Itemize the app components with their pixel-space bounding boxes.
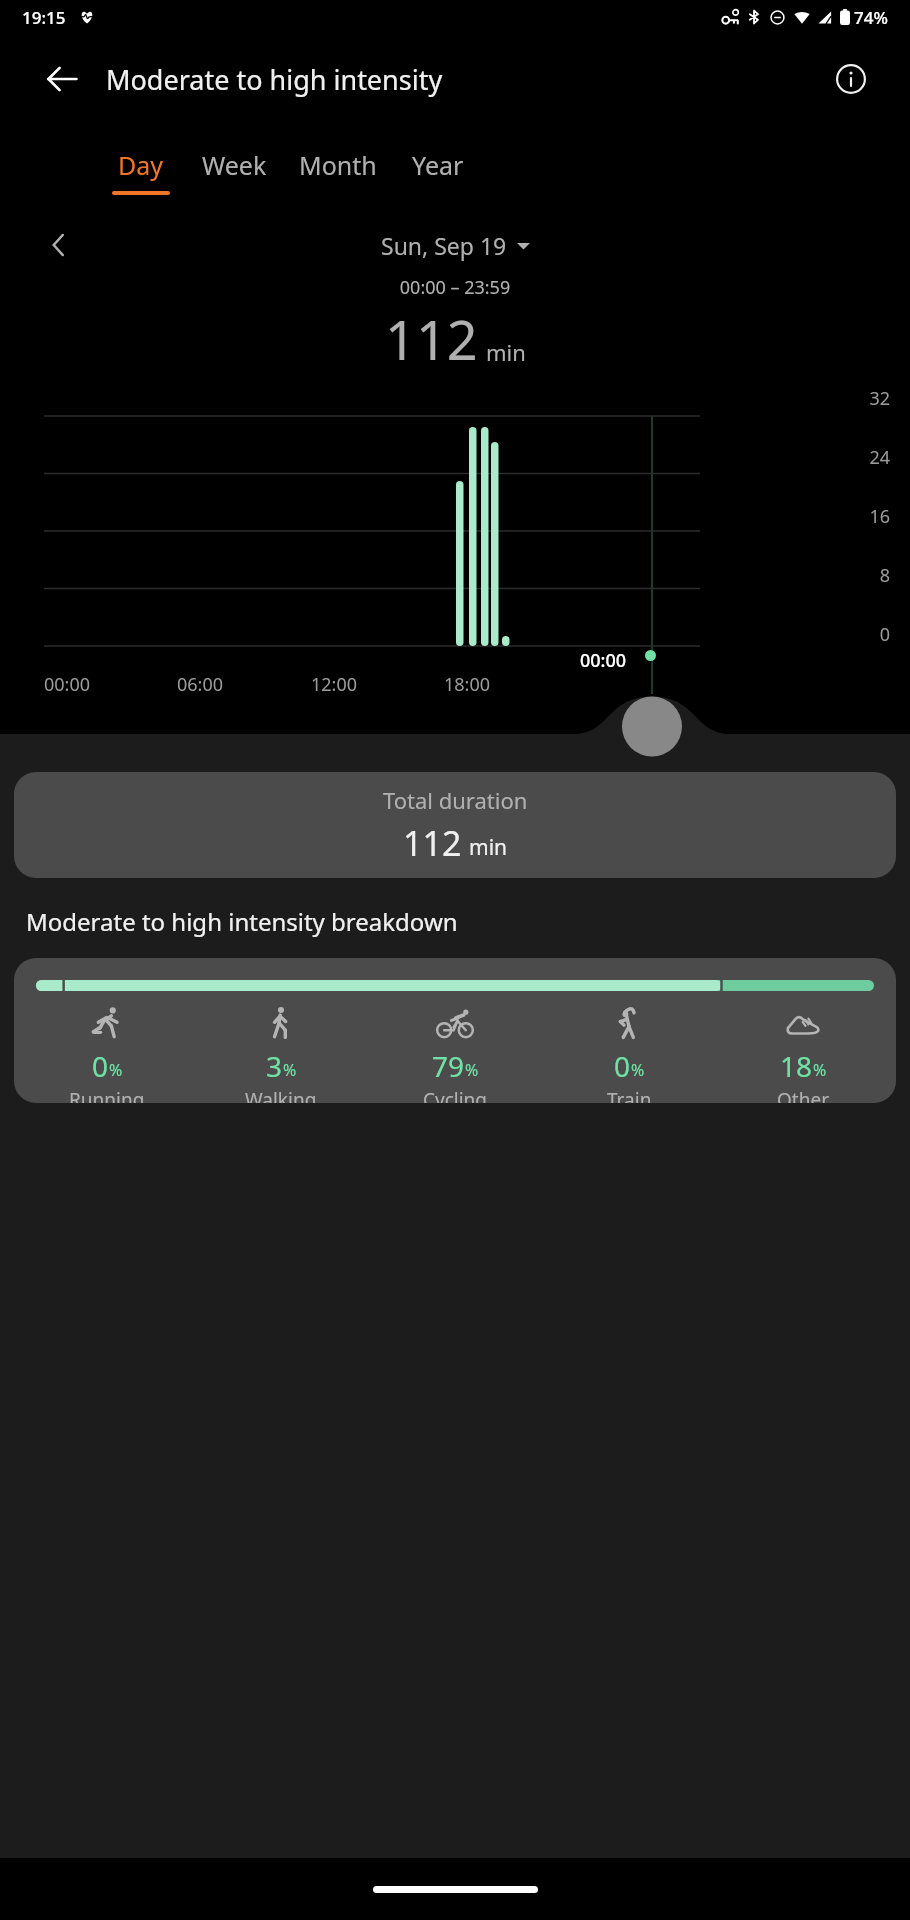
staticText: 32 bbox=[0, 386, 890, 411]
staticText: 0 bbox=[0, 622, 890, 647]
button[interactable]: 18 bbox=[716, 1005, 890, 1103]
staticText: 18 bbox=[780, 1047, 813, 1085]
staticText: 0 bbox=[92, 1047, 109, 1085]
staticText: 00:00 bbox=[44, 672, 91, 697]
staticText: 00:00 – 23:59 bbox=[0, 275, 910, 300]
staticText: 06:00 bbox=[177, 672, 224, 697]
staticText: Total duration bbox=[383, 785, 528, 815]
button[interactable]: 0 bbox=[14, 958, 896, 1103]
button[interactable]: 0 bbox=[20, 1005, 194, 1103]
staticText: 79 bbox=[432, 1047, 465, 1085]
button[interactable]: 79 bbox=[368, 1005, 542, 1103]
button[interactable]: Week bbox=[186, 148, 283, 195]
staticText: 19:15 bbox=[22, 6, 66, 29]
staticText: % bbox=[465, 1059, 479, 1081]
staticText: min bbox=[469, 833, 508, 862]
staticText: 0 bbox=[614, 1047, 631, 1085]
staticText: Running bbox=[69, 1087, 145, 1103]
staticText: Other bbox=[777, 1087, 830, 1103]
button[interactable]: Previous day bbox=[36, 222, 82, 268]
staticText: 8 bbox=[0, 563, 890, 588]
staticText: 18:00 bbox=[444, 672, 491, 697]
staticText: Moderate to high intensity bbox=[106, 61, 443, 98]
staticText: 16 bbox=[0, 504, 890, 529]
staticText: 74% bbox=[854, 6, 888, 29]
button[interactable]: Day bbox=[96, 148, 186, 195]
staticText: Walking bbox=[245, 1087, 317, 1103]
button[interactable]: Back bbox=[38, 55, 86, 103]
button[interactable]: Month bbox=[283, 148, 393, 195]
staticText: % bbox=[283, 1059, 297, 1081]
staticText: 112 bbox=[385, 302, 478, 376]
button[interactable]: Information bbox=[828, 56, 874, 102]
staticText: Cycling bbox=[423, 1087, 488, 1103]
button[interactable]: Sun, Sep 19 bbox=[375, 224, 536, 267]
button[interactable]: 3 bbox=[194, 1005, 368, 1103]
staticText: % bbox=[813, 1059, 827, 1081]
staticText: % bbox=[109, 1059, 123, 1081]
staticText: 12:00 bbox=[311, 672, 358, 697]
staticText: Sun, Sep 19 bbox=[381, 230, 507, 261]
staticText: 112 bbox=[403, 820, 462, 866]
staticText: 24 bbox=[0, 445, 890, 470]
button[interactable]: Year bbox=[393, 148, 483, 195]
staticText: Day bbox=[118, 148, 164, 182]
button[interactable]: Total duration bbox=[14, 772, 896, 878]
staticText: 00:00 bbox=[580, 648, 627, 673]
staticText: 3 bbox=[266, 1047, 283, 1085]
staticText: % bbox=[631, 1059, 645, 1081]
staticText: Train bbox=[607, 1087, 652, 1103]
staticText: Month bbox=[299, 148, 377, 182]
staticText: Moderate to high intensity breakdown bbox=[26, 905, 458, 938]
staticText: min bbox=[486, 337, 526, 367]
staticText: Year bbox=[412, 148, 464, 182]
button[interactable]: 0 bbox=[542, 1005, 716, 1103]
staticText: Week bbox=[202, 148, 267, 182]
